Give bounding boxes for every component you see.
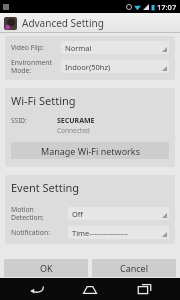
staticText: Wi-Fi Setting [11,93,76,108]
button[interactable]: Cancel [92,259,176,277]
button[interactable]: Recent apps [127,278,161,300]
button[interactable]: Back [20,278,54,300]
staticText: Manage Wi-Fi networks [41,145,140,157]
staticText: Connected [57,126,90,135]
staticText: 17:07 [157,2,177,12]
staticText: OK [40,262,53,274]
button[interactable]: Off [68,207,169,220]
staticText: Indoor(50hz) [65,62,111,72]
button[interactable]: Indoor(50hz) [61,60,169,73]
staticText: SECURAME [57,116,95,126]
button[interactable]: Normal [61,41,169,54]
staticText: Event Setting [11,180,80,195]
staticText: Advanced Setting [22,16,104,30]
staticText: Notification: [11,228,68,237]
staticText: Motion Detection: [11,205,68,222]
button[interactable]: Manage Wi-Fi networks [11,142,169,159]
button[interactable]: Time---------------- [68,226,169,239]
staticText: Normal [65,43,92,53]
button[interactable]: Home [73,278,107,300]
staticText: Time---------------- [72,228,128,238]
staticText: Video Flip: [11,43,61,52]
staticText: Cancel [120,262,149,274]
button[interactable]: OK [4,259,88,277]
staticText: Environment Mode: [11,58,61,75]
staticText: SSID: [11,116,57,125]
staticText: Off [72,209,84,219]
